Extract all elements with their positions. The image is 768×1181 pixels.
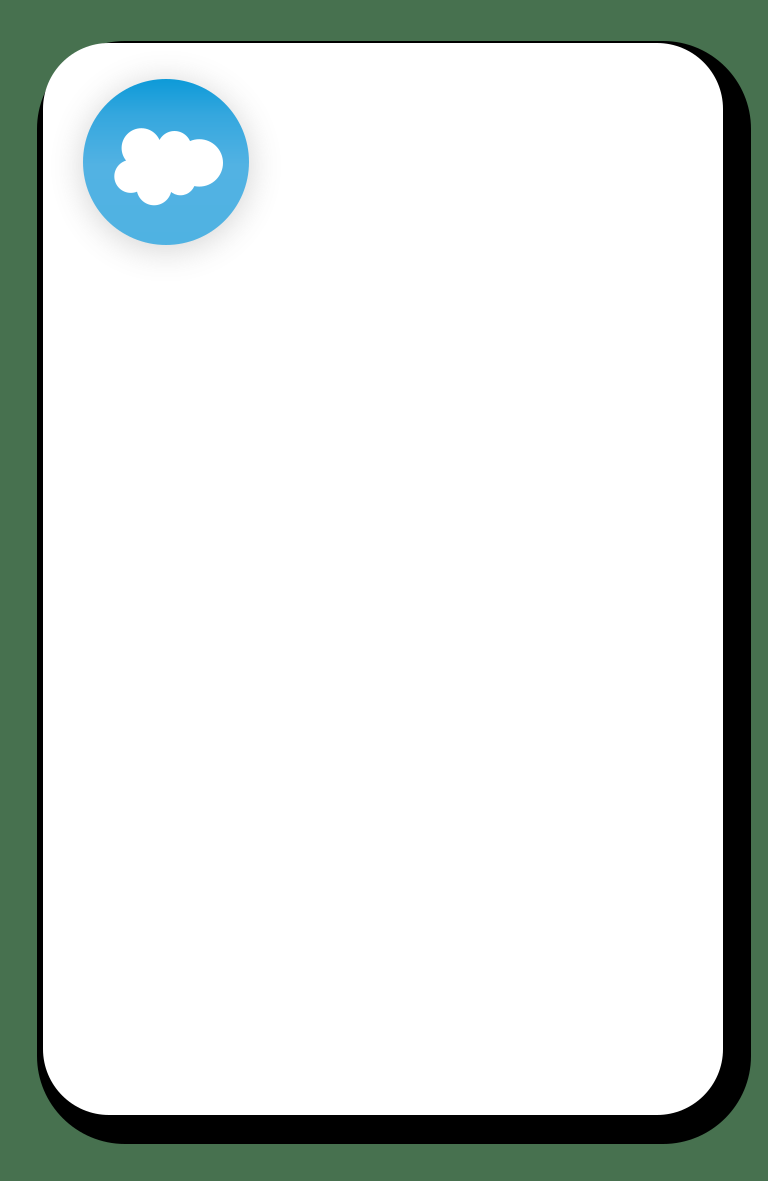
- button[interactable]: Salesforce: [43, 43, 723, 1115]
